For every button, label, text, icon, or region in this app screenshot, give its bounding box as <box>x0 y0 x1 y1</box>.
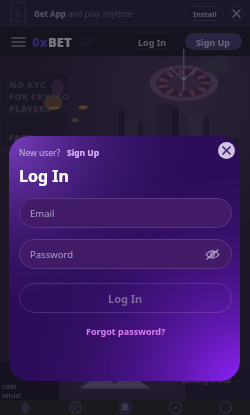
staticText: Log In <box>19 165 69 187</box>
button[interactable]: Hot <box>0 400 50 415</box>
staticText: Log In <box>138 36 167 48</box>
staticText: Log In <box>108 291 143 306</box>
staticText: Sign Up <box>196 36 231 48</box>
staticText: Forgot password? <box>86 325 166 337</box>
staticText: betting limits! <box>182 376 232 386</box>
button[interactable]: Log In <box>125 33 179 50</box>
staticText: Install <box>193 9 217 19</box>
staticText: coin onus! <box>2 382 21 400</box>
button[interactable]: Sports <box>50 400 100 415</box>
staticText: FOR CRYPTO <box>9 90 70 102</box>
button[interactable]: Password <box>19 239 232 269</box>
button[interactable]: Install <box>185 6 224 21</box>
staticText: Get App <box>34 8 66 19</box>
staticText: FAST <box>9 131 33 143</box>
button[interactable]: 0x <box>32 33 72 51</box>
button[interactable]: Menu <box>10 34 26 50</box>
button[interactable]: Sign Up <box>67 147 100 159</box>
staticText: PLAYERS <box>9 102 51 114</box>
button[interactable]: Log In <box>19 283 232 313</box>
button[interactable]: Explore <box>150 400 200 415</box>
button[interactable]: Email <box>19 198 232 228</box>
staticText: Email <box>30 207 55 220</box>
button[interactable]: Close banner <box>229 6 244 21</box>
staticText: Sign Up <box>67 147 100 159</box>
button[interactable]: Forgot password? <box>86 325 166 337</box>
staticText: 0x <box>32 33 48 51</box>
button[interactable]: Sign Up <box>185 33 242 50</box>
staticText: and play anytime <box>66 8 133 19</box>
staticText: New user? <box>19 147 61 159</box>
button[interactable]: Close <box>218 142 235 159</box>
staticText: Password <box>30 248 73 261</box>
staticText: BET <box>48 33 72 51</box>
button[interactable]: More <box>200 400 250 415</box>
staticText: NO KYC <box>9 78 47 90</box>
staticText: PAYOUTS <box>9 143 54 155</box>
button[interactable]: Profile <box>100 400 150 415</box>
